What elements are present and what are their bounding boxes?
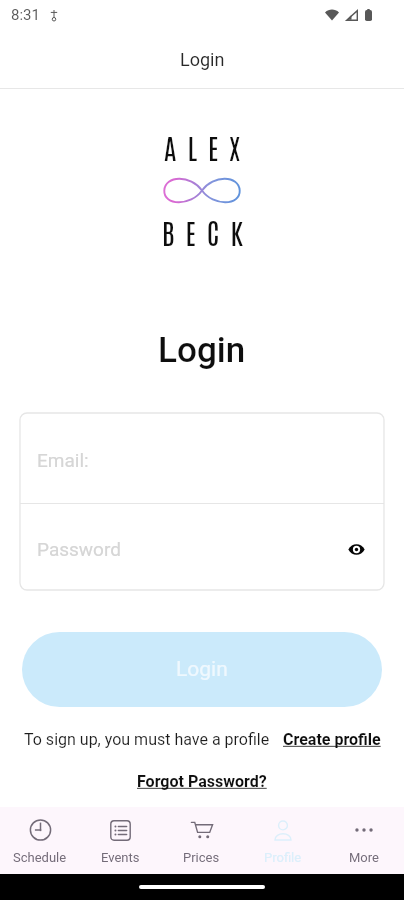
button[interactable]: Profile (242, 807, 323, 874)
staticText: 8:31 (11, 6, 40, 24)
button[interactable]: Show password (342, 535, 370, 563)
staticText: Schedule (13, 850, 67, 865)
staticText: More (349, 850, 379, 865)
button[interactable]: Events (80, 807, 161, 874)
staticText: Login (158, 330, 246, 371)
staticText: Email: (37, 449, 89, 471)
button[interactable]: Create profile (283, 730, 381, 749)
button[interactable]: Prices (161, 807, 242, 874)
staticText: Login (176, 657, 228, 682)
staticText: Prices (183, 850, 220, 865)
staticText: BECK (162, 214, 254, 250)
staticText: To sign up, you must have a profile (24, 730, 270, 749)
button[interactable]: Login (22, 632, 382, 707)
staticText: Profile (264, 850, 302, 865)
staticText: ALEX (164, 129, 252, 165)
button[interactable]: Forgot Password? (137, 772, 267, 791)
staticText: Events (101, 850, 140, 865)
staticText: Login (180, 49, 225, 70)
button[interactable]: Password (20, 504, 384, 590)
button[interactable]: Schedule (0, 807, 80, 874)
staticText: Password (37, 538, 121, 560)
button[interactable]: Email: (20, 413, 384, 503)
button[interactable]: More (323, 807, 404, 874)
